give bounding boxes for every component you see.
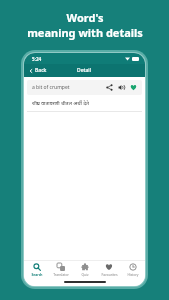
button[interactable]: a bit of crumpet: [27, 80, 142, 95]
staticText: Back: [35, 67, 47, 74]
staticText: Word's: [66, 10, 104, 25]
button[interactable]: History: [121, 261, 145, 278]
staticText: History: [127, 272, 139, 276]
other: Back: [29, 69, 33, 73]
button[interactable]: Favorite: [130, 84, 137, 91]
button[interactable]: Play pronunciation: [118, 84, 125, 91]
button[interactable]: Share: [106, 84, 113, 91]
staticText: Translator: [53, 272, 69, 276]
staticText: a bit of crumpet: [32, 84, 106, 91]
staticText: Search: [31, 272, 43, 276]
staticText: शीघ्र वातावरणी चीतल अर्थी देते: [32, 100, 89, 107]
button[interactable]: Translator: [49, 261, 73, 278]
button[interactable]: Search: [24, 261, 49, 278]
button[interactable]: Quiz: [73, 261, 97, 278]
button[interactable]: Favourites: [97, 261, 121, 278]
staticText: 5:24: [32, 56, 42, 62]
staticText: meaning with details: [27, 25, 143, 40]
staticText: Quiz: [81, 272, 89, 276]
button[interactable]: Back: [24, 64, 52, 77]
staticText: Detail: [77, 67, 92, 74]
staticText: Favourites: [101, 272, 118, 276]
